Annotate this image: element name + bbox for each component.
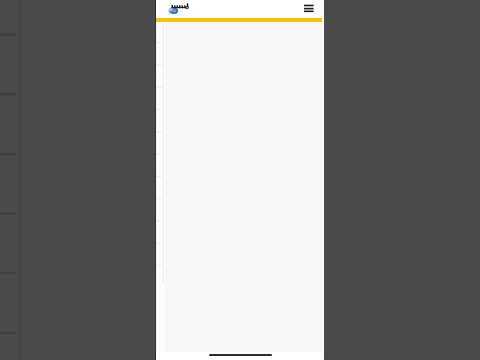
button[interactable]: Home gesture bar xyxy=(209,354,272,356)
button[interactable]: Open navigation menu xyxy=(298,0,318,18)
button[interactable]: Navigation drawer xyxy=(156,22,165,352)
button[interactable]: Mawsil home xyxy=(167,0,203,18)
